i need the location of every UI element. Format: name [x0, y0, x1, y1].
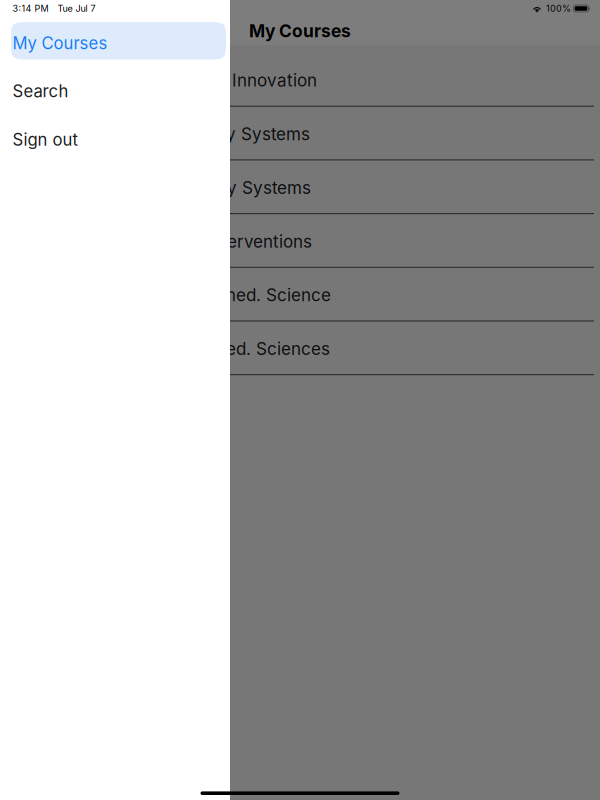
staticText: Principles of Applied Biomed. Sciences: [16, 338, 330, 359]
button[interactable]: Nursing Applied Physiology Systems: [0, 107, 600, 159]
button[interactable]: Principles of Applied Biomed. Sciences: [0, 321, 600, 374]
staticText: 100%: [546, 3, 571, 14]
button[interactable]: My Courses: [11, 22, 226, 59]
staticText: Nursing Applied Physiology Systems: [16, 124, 310, 144]
staticText: My Courses: [249, 20, 351, 41]
button[interactable]: Sign out: [11, 118, 226, 156]
button[interactable]: Foundations of Nursing Interventions: [0, 214, 600, 267]
button[interactable]: Search: [11, 70, 226, 107]
staticText: Search: [12, 81, 68, 101]
staticText: Foundations of Nursing Interventions: [16, 231, 312, 252]
button[interactable]: Introduction to Healthcare Innovation: [0, 53, 600, 106]
button[interactable]: Medical Applied Physiology Systems: [0, 160, 600, 213]
staticText: Foundation of Applied Biomed. Science: [16, 285, 331, 305]
staticText: Introduction to Healthcare Innovation: [16, 70, 317, 91]
button[interactable]: Foundation of Applied Biomed. Science: [0, 268, 600, 320]
staticText: Sign out: [12, 130, 77, 150]
staticText: Medical Applied Physiology Systems: [16, 177, 311, 198]
staticText: My Courses: [12, 33, 107, 53]
staticText: 3:14 PM Tue Jul 7: [12, 3, 95, 14]
